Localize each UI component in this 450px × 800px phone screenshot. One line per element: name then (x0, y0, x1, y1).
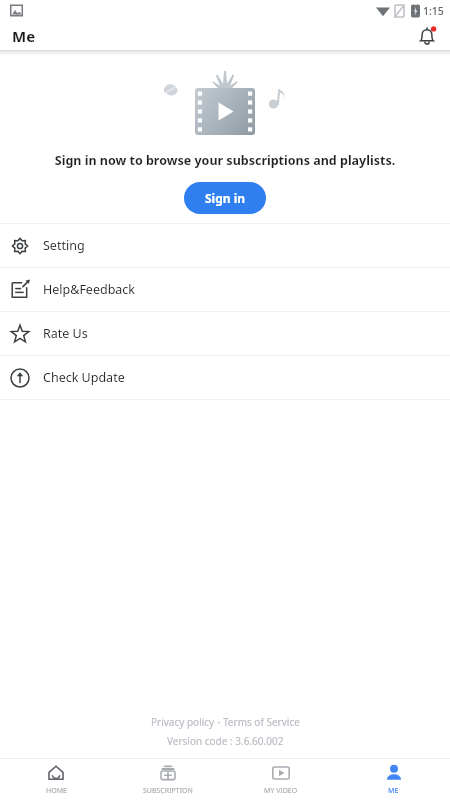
staticText: Setting (43, 237, 85, 254)
button[interactable]: Setting (0, 224, 450, 267)
staticText: Sign in (205, 190, 246, 206)
button[interactable]: Notifications (412, 22, 442, 50)
staticText: Help&Feedback (43, 281, 136, 298)
button[interactable]: Help&Feedback (0, 268, 450, 311)
button[interactable]: Terms of Service (223, 715, 300, 729)
staticText: Me (12, 26, 36, 46)
button[interactable]: Check Update (0, 356, 450, 399)
staticText: Privacy policy (151, 715, 215, 729)
button[interactable]: SUBSCRIPTION (112, 759, 224, 800)
staticText: SUBSCRIPTION (143, 786, 193, 796)
staticText: 1:15 (423, 4, 444, 18)
staticText: MY VIDEO (264, 786, 298, 796)
button[interactable]: HOME (0, 759, 112, 800)
staticText: · (215, 715, 223, 729)
staticText: Version code : 3.6.60.002 (167, 734, 284, 748)
staticText: Check Update (43, 369, 125, 386)
staticText: Rate Us (43, 325, 88, 342)
staticText: ME (388, 786, 399, 796)
staticText: Terms of Service (223, 715, 300, 729)
button[interactable]: Privacy policy (151, 715, 215, 729)
staticText: Sign in now to browse your subscriptions… (16, 152, 434, 169)
button[interactable]: MY VIDEO (224, 759, 337, 800)
staticText: HOME (46, 786, 67, 796)
button[interactable]: Sign in (184, 182, 266, 214)
button[interactable]: Rate Us (0, 312, 450, 355)
button[interactable]: ME (337, 759, 450, 800)
